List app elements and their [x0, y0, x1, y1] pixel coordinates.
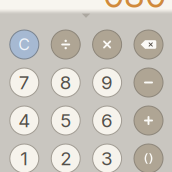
- staticText: C: [18, 35, 30, 54]
- staticText: 5: [60, 109, 71, 132]
- button[interactable]: 1: [10, 144, 39, 172]
- button[interactable]: 6: [93, 106, 122, 135]
- button[interactable]: 7: [10, 68, 39, 97]
- staticText: 9: [101, 71, 113, 94]
- button[interactable]: 5: [51, 106, 80, 135]
- staticText: 8: [60, 71, 72, 94]
- staticText: 080: [103, 0, 166, 16]
- staticText: 7: [19, 71, 30, 94]
- button[interactable]: [134, 144, 163, 172]
- staticText: 1: [20, 147, 28, 170]
- button[interactable]: [93, 30, 122, 59]
- button[interactable]: 8: [51, 68, 80, 97]
- button[interactable]: 9: [93, 68, 122, 97]
- staticText: 3: [101, 147, 113, 170]
- button[interactable]: 4: [10, 106, 39, 135]
- staticText: 6: [101, 109, 113, 132]
- staticText: 4: [18, 109, 30, 132]
- button[interactable]: 3: [93, 144, 122, 172]
- button[interactable]: [134, 106, 163, 135]
- button[interactable]: [134, 30, 163, 59]
- staticText: 2: [60, 147, 71, 170]
- button[interactable]: [51, 30, 80, 59]
- button[interactable]: 2: [51, 144, 80, 172]
- button[interactable]: [134, 68, 163, 97]
- button[interactable]: C: [10, 30, 39, 59]
